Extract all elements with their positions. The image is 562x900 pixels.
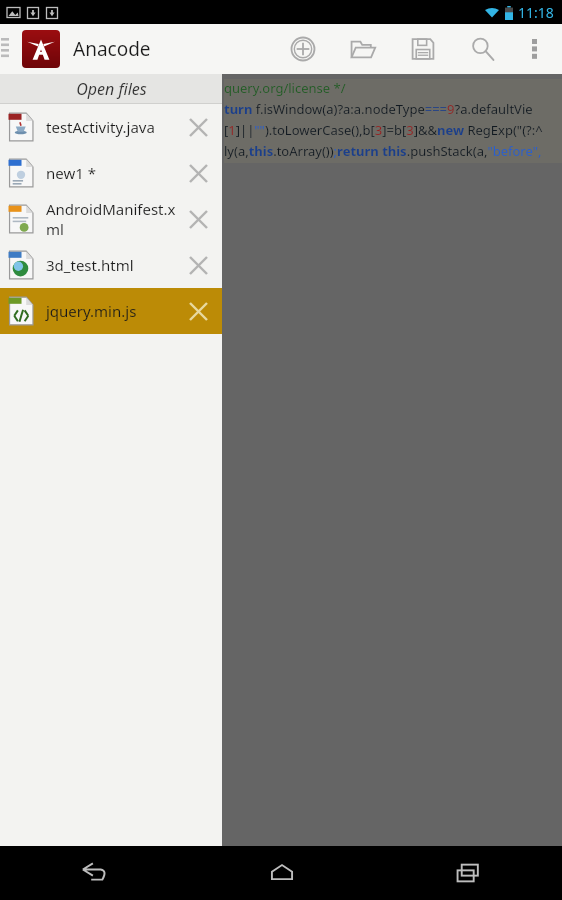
staticText: 3d_test.html [46,255,178,275]
button[interactable]: Back [0,846,188,900]
button[interactable]: Save [404,30,442,68]
staticText: new1 * [46,163,178,183]
button[interactable]: 3d_test.html [0,242,222,288]
button[interactable]: More options [516,31,552,67]
button[interactable]: testActivity.java [0,104,222,150]
button[interactable]: Close new1 * [178,153,218,193]
staticText: jquery.min.js [46,301,178,321]
button[interactable]: Open drawer [1,38,9,60]
button[interactable]: Add [284,30,322,68]
button[interactable]: Search [464,30,502,68]
button[interactable]: Anacode [22,30,60,68]
staticText: Open files [76,78,147,100]
button[interactable]: Open [344,30,382,68]
button[interactable]: Close testActivity.java [178,107,218,147]
staticText: ly(a,this.toArray());return this.pushSta… [224,142,542,160]
staticText: testActivity.java [46,117,178,137]
staticText: 11:18 [518,3,554,22]
button[interactable]: Home [188,846,375,900]
staticText: query.org/license */ [224,79,346,97]
button[interactable]: Close AndroidManifest.xml [178,199,218,239]
button[interactable]: jquery.min.js [0,288,222,334]
staticText: turn f.isWindow(a)?a:a.nodeType===9?a.de… [224,100,533,118]
button[interactable]: Recent apps [375,846,562,900]
button[interactable]: AndroidManifest.xml [0,196,222,242]
button[interactable]: Close jquery.min.js [178,291,218,331]
staticText: [1]||"").toLowerCase(),b[3]=b[3]&&new Re… [224,121,543,139]
staticText: Anacode [73,36,151,62]
button[interactable]: new1 * [0,150,222,196]
staticText: AndroidManifest.xml [46,199,178,239]
button[interactable]: Close 3d_test.html [178,245,218,285]
